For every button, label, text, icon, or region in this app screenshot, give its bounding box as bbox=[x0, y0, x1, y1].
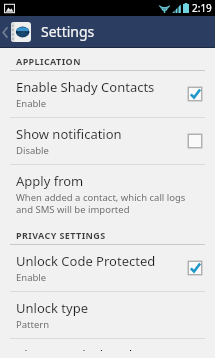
button[interactable]: Unlock Code Protected bbox=[0, 245, 215, 291]
staticText: Change unlock code bbox=[16, 346, 140, 351]
staticText: Apply from bbox=[16, 172, 84, 190]
button[interactable]: Navigate up bbox=[0, 22, 33, 42]
button[interactable]: Change unlock code bbox=[0, 339, 215, 358]
button[interactable]: Checked bbox=[187, 86, 203, 102]
button[interactable]: Checked bbox=[187, 260, 203, 276]
staticText: PRIVACY SETTINGS bbox=[16, 229, 106, 241]
staticText: Show notification bbox=[16, 125, 122, 143]
staticText: Enable bbox=[16, 97, 47, 110]
staticText: When added a contact, which call logs an… bbox=[16, 191, 186, 215]
staticText: Unlock type bbox=[16, 299, 88, 317]
staticText: 2:19 bbox=[192, 1, 212, 15]
staticText: Enable bbox=[16, 271, 47, 284]
staticText: Enable Shady Contacts bbox=[16, 78, 155, 96]
button[interactable]: Unchecked bbox=[187, 133, 203, 149]
staticText: Pattern bbox=[16, 318, 50, 331]
staticText: APPLICATION bbox=[16, 55, 81, 67]
button[interactable]: Unlock type bbox=[0, 292, 215, 338]
button[interactable]: Enable Shady Contacts bbox=[0, 71, 215, 117]
button[interactable]: Show notification bbox=[0, 118, 215, 164]
staticText: Disable bbox=[16, 144, 49, 157]
button[interactable]: Apply from bbox=[0, 165, 215, 222]
staticText: Unlock Code Protected bbox=[16, 252, 156, 270]
staticText: Settings bbox=[41, 22, 95, 41]
